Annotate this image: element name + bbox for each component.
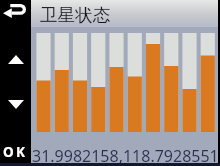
button[interactable]: 31.9982158,118.7928551: [31, 132, 220, 166]
staticText: OK: [3, 143, 28, 161]
button[interactable]: OK: [0, 138, 31, 166]
button[interactable]: 卫星状态: [31, 0, 220, 27]
staticText: 31.9982158,118.7928551: [32, 145, 219, 166]
button[interactable]: Scroll down: [0, 88, 31, 120]
button[interactable]: Scroll up: [0, 42, 31, 76]
staticText: 卫星状态: [40, 4, 111, 26]
button[interactable]: Satellite signal strength chart: [31, 27, 220, 132]
button[interactable]: Back: [0, 0, 31, 28]
